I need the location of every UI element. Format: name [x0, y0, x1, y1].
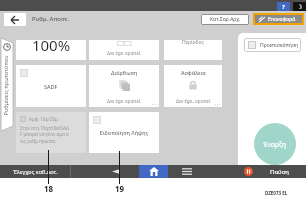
staticText: SADF	[44, 83, 58, 90]
staticText: Δεν έχει οριστεί.	[107, 98, 142, 104]
staticText: Ρυθμίσεις πρωτοτύπου	[1, 46, 8, 124]
staticText: 19	[112, 183, 127, 194]
staticText: DZE073 EL	[265, 190, 288, 196]
button[interactable]: Επαναφορά	[259, 13, 304, 25]
staticText: Έλεγχος καθ.Δοτ.	[13, 168, 58, 175]
staticText: ?	[282, 3, 285, 11]
staticText: Παύση	[270, 168, 289, 176]
button[interactable]: Menu	[172, 165, 202, 178]
staticText: Δεν έχει οριστεί.	[107, 50, 142, 56]
staticText: 100%	[16, 35, 86, 55]
staticText: Δεν έχει. οριστεί	[176, 98, 211, 104]
staticText: Ασφάλεια	[181, 69, 206, 76]
button[interactable]: Διόρθωση	[89, 65, 159, 107]
staticText: Κατ.Σαρ.Αρχ.	[210, 16, 241, 23]
staticText: Ειδοποίηση Λήψης	[89, 129, 159, 136]
button[interactable]: Έναρξη	[254, 123, 296, 165]
button[interactable]: Έλεγχος καθ.Δοτ.	[0, 165, 70, 178]
button[interactable]: Help	[277, 2, 290, 11]
staticText: Αμφ. 10μ/20μ	[29, 116, 58, 122]
staticText: ☽	[297, 3, 303, 10]
staticText: Έναρξη	[263, 140, 287, 149]
button[interactable]: Ασφάλεια	[164, 65, 222, 107]
staticText: Περίοδος	[164, 39, 222, 46]
staticText: Ρυθμ. Αποστ.	[32, 15, 70, 23]
staticText: 18	[41, 183, 56, 194]
button[interactable]: Προεπισκόπηση	[244, 38, 301, 52]
staticText: Στην στη. Παρτίδα/SAΔ F μπορεί να γίνει …	[20, 125, 69, 145]
staticText: Διόρθωση	[111, 69, 138, 76]
button[interactable]: Home	[139, 165, 168, 178]
button[interactable]: Back	[4, 13, 26, 26]
button[interactable]: 100%	[16, 40, 86, 60]
button[interactable]: Night mode	[293, 2, 306, 11]
staticText: Προεπισκόπηση	[260, 42, 298, 49]
staticText: Επαναφορά	[268, 16, 296, 23]
button[interactable]: Δεν έχει οριστεί.	[89, 40, 159, 60]
button[interactable]: Περίοδος	[164, 40, 222, 60]
button[interactable]: Παύση	[235, 165, 306, 178]
button[interactable]	[1, 38, 13, 131]
button[interactable]: Ειδοποίηση Λήψης	[89, 112, 159, 153]
button[interactable]: SADF	[16, 65, 86, 107]
button[interactable]: Αμφ. 10μ/20μ	[16, 112, 86, 153]
button[interactable]: Κατ.Σαρ.Αρχ.	[201, 14, 249, 25]
